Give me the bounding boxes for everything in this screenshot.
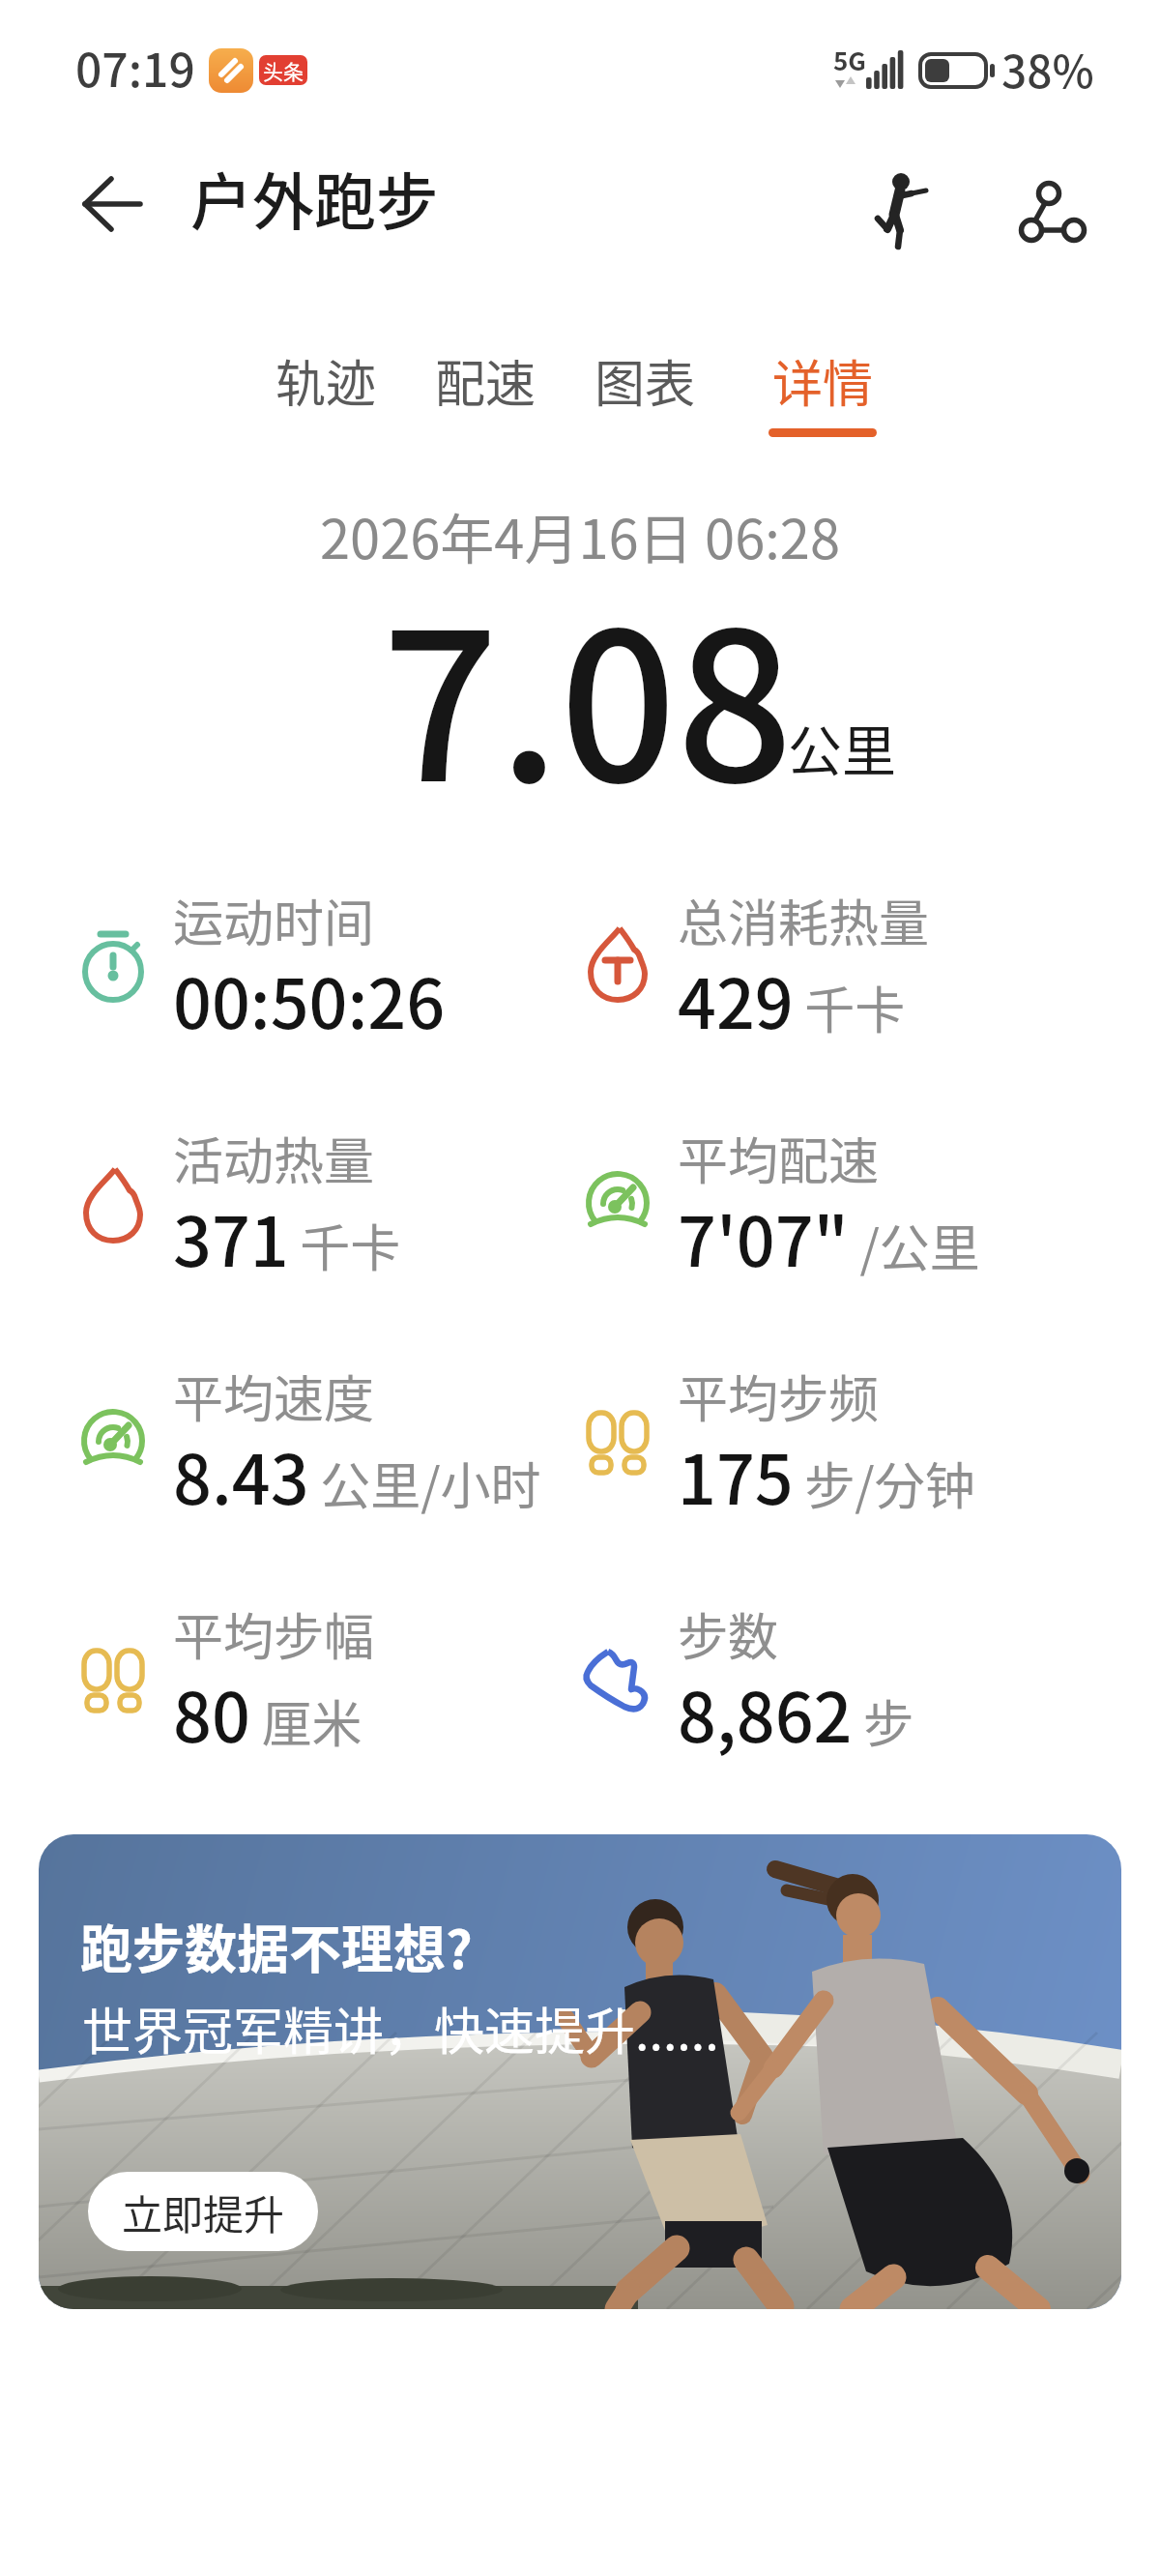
staticText: 轨迹	[275, 344, 377, 417]
staticText: 429 千卡	[678, 951, 906, 1048]
staticText: 平均步幅	[173, 1597, 375, 1670]
staticText: 步数	[678, 1597, 779, 1670]
staticText: 7.08	[382, 543, 794, 840]
staticText: 头条	[263, 56, 304, 85]
button[interactable]: 跑步数据不理想?	[39, 1834, 1121, 2309]
staticText: 图表	[594, 344, 696, 417]
button[interactable]: 轨迹	[258, 337, 393, 424]
staticText: 户外跑步	[190, 153, 438, 243]
staticText: 175 步/分钟	[678, 1426, 975, 1524]
staticText: 00:50:26	[173, 951, 446, 1048]
staticText: 80 厘米	[173, 1664, 362, 1762]
button[interactable]: 配速	[418, 337, 553, 424]
staticText: 2026年4月16日 06:28	[0, 496, 1160, 574]
staticText: 07:19	[75, 33, 195, 101]
staticText: 7'07" /公里	[678, 1188, 980, 1286]
staticText: 公里	[788, 708, 896, 786]
staticText: 活动热量	[173, 1122, 375, 1194]
staticText: 371 千卡	[173, 1188, 401, 1286]
staticText: 立即提升	[122, 2182, 285, 2241]
staticText: 世界冠军精讲，快速提升......	[82, 1992, 719, 2064]
staticText: 详情	[772, 344, 874, 417]
staticText: 跑步数据不理想?	[80, 1908, 473, 1983]
staticText: 8,862 步	[678, 1664, 914, 1762]
staticText: 38%	[1001, 37, 1094, 102]
button[interactable]	[1009, 166, 1094, 251]
staticText: 5G	[833, 42, 866, 78]
button[interactable]: 图表	[577, 337, 712, 424]
staticText: 平均速度	[173, 1360, 375, 1432]
button[interactable]: 详情	[755, 337, 890, 424]
staticText: 总消耗热量	[678, 884, 930, 956]
staticText: 平均步频	[678, 1360, 880, 1432]
button[interactable]	[858, 162, 940, 244]
button[interactable]	[68, 161, 157, 249]
staticText: 运动时间	[173, 884, 375, 956]
button[interactable]: 立即提升	[88, 2172, 318, 2251]
staticText: 配速	[435, 344, 536, 417]
staticText: 平均配速	[678, 1122, 880, 1194]
staticText: 8.43 公里/小时	[173, 1426, 541, 1524]
